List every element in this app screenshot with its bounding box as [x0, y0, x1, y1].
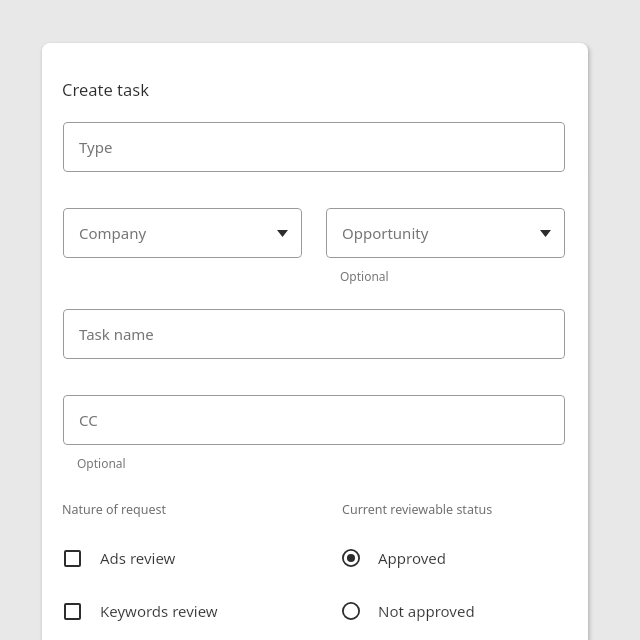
button[interactable]: Keywords review — [64, 601, 342, 621]
staticText: CC — [79, 410, 98, 430]
staticText: Task name — [79, 324, 154, 344]
button[interactable]: CC — [63, 395, 565, 445]
button[interactable]: Ads review — [64, 548, 342, 568]
staticText: Ads review — [100, 548, 176, 568]
staticText: Optional — [340, 268, 389, 284]
staticText: Approved — [378, 548, 447, 568]
button[interactable]: Type — [63, 122, 565, 172]
staticText: Nature of request — [62, 501, 342, 518]
staticText: Company — [79, 223, 147, 243]
button[interactable]: Opportunity — [326, 208, 565, 258]
staticText: Optional — [77, 455, 126, 471]
button[interactable]: Company — [63, 208, 302, 258]
button[interactable]: Task name — [63, 309, 565, 359]
staticText: Create task — [62, 78, 149, 100]
staticText: Not approved — [378, 601, 475, 621]
staticText: Current reviewable status — [342, 501, 493, 518]
staticText: Keywords review — [100, 601, 218, 621]
staticText: Opportunity — [342, 223, 429, 243]
staticText: Type — [79, 137, 113, 157]
button[interactable]: Approved — [342, 548, 447, 568]
button[interactable]: Not approved — [342, 601, 475, 621]
